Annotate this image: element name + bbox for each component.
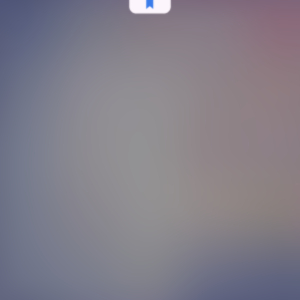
button[interactable]: Bookmark — [130, 0, 171, 13]
